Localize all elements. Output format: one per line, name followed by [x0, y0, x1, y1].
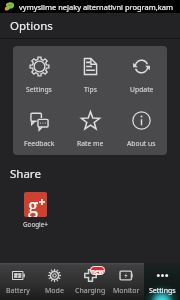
staticText: Google+ — [23, 220, 48, 229]
staticText: Charging — [75, 286, 106, 296]
staticText: Monitor — [113, 286, 140, 296]
button[interactable]: Update — [116, 46, 167, 100]
staticText: Feedback — [24, 139, 55, 148]
button[interactable]: Monitor — [108, 263, 144, 300]
staticText: Options — [10, 18, 53, 34]
staticText: Rate me — [77, 139, 104, 148]
staticText: About us — [127, 139, 156, 148]
staticText: Update — [130, 85, 154, 94]
button[interactable]: Settings — [144, 263, 180, 300]
button[interactable]: Mode — [36, 263, 72, 300]
staticText: new — [91, 267, 104, 274]
staticText: g — [28, 193, 39, 217]
button[interactable]: g — [22, 192, 48, 229]
staticText: Battery — [6, 286, 30, 296]
staticText: Settings — [149, 286, 176, 296]
staticText: Settings — [26, 85, 52, 94]
button[interactable]: Battery — [0, 263, 36, 300]
staticText: Mode — [45, 286, 64, 296]
button[interactable]: Tips — [65, 46, 116, 100]
button[interactable]: new — [72, 263, 108, 300]
button[interactable]: Rate me — [65, 100, 116, 155]
staticText: vymyslime nejaky alternativni program,ka… — [19, 2, 174, 12]
button[interactable]: Settings — [13, 46, 65, 100]
button[interactable]: About us — [116, 100, 167, 155]
staticText: Share — [10, 166, 41, 182]
button[interactable]: Feedback — [13, 100, 65, 155]
staticText: Tips — [84, 85, 97, 94]
